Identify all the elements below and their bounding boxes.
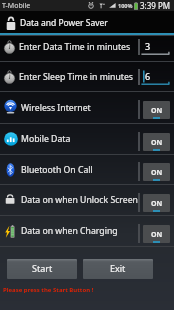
staticText: 100% — [118, 2, 133, 9]
staticText: ON — [151, 138, 163, 148]
staticText: 3 — [145, 40, 151, 52]
staticText: Please press the Start Button ! — [3, 286, 94, 294]
button[interactable]: 3 — [139, 39, 170, 55]
button[interactable]: On — [138, 224, 170, 243]
staticText: ON — [151, 106, 163, 116]
other: Bluetooth On Call — [5, 163, 16, 177]
button[interactable]: Data on when Charging — [0, 216, 174, 246]
button[interactable]: 6 — [139, 69, 170, 85]
staticText: Data and Power Saver — [20, 17, 108, 29]
staticText: Wireless Internet — [21, 102, 91, 114]
staticText: T-Mobile — [2, 1, 31, 11]
staticText: Data on when Unlock Screen — [21, 194, 138, 206]
staticText: 3:39 PM — [140, 0, 171, 11]
staticText: ON — [151, 168, 163, 178]
button[interactable]: Exit — [83, 259, 153, 279]
button[interactable]: Enter Data Time in minutes — [0, 34, 174, 59]
other: Data on when Charging — [5, 224, 16, 239]
button[interactable]: Mobile Data — [0, 124, 174, 154]
button[interactable]: On — [138, 132, 170, 151]
staticText: Exit — [110, 262, 126, 274]
button[interactable]: On — [138, 100, 170, 119]
staticText: Enter Sleep Time in minutes — [19, 71, 134, 83]
other: Mobile Data — [4, 132, 18, 146]
other: Wireless Internet — [4, 100, 17, 116]
button[interactable]: Start — [7, 259, 77, 279]
button[interactable]: Bluetooth On Call — [0, 155, 174, 184]
other: Data on when Unlock Screen — [5, 193, 17, 207]
staticText: Bluetooth On Call — [21, 164, 93, 176]
staticText: Start — [32, 262, 53, 274]
button[interactable]: Enter Sleep Time in minutes — [0, 62, 174, 91]
button[interactable]: Data on when Unlock Screen — [0, 185, 174, 215]
button[interactable]: Wireless Internet — [0, 92, 174, 123]
staticText: Enter Data Time in minutes — [19, 41, 131, 53]
staticText: Data on when Charging — [21, 225, 118, 237]
staticText: 6 — [145, 70, 151, 82]
staticText: ON — [151, 230, 163, 240]
staticText: ON — [151, 199, 163, 209]
staticText: Mobile Data — [21, 133, 71, 145]
button[interactable]: On — [138, 193, 170, 212]
button[interactable]: On — [138, 162, 170, 181]
